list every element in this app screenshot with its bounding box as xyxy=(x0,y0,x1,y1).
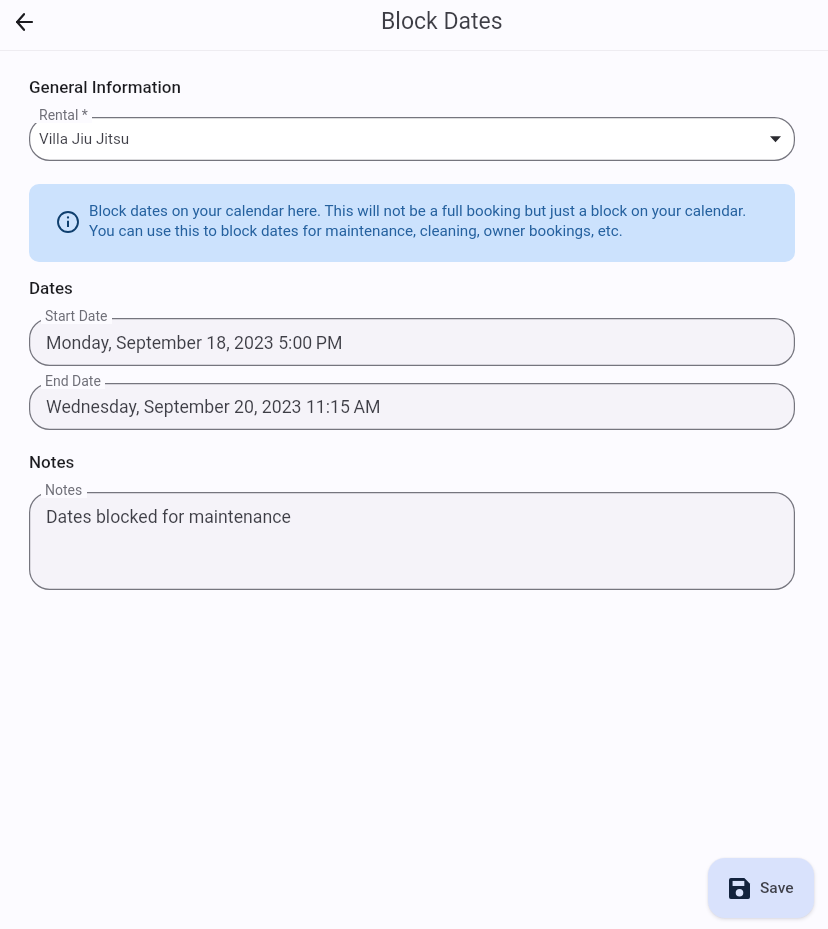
staticText: Block dates on your calendar here. This … xyxy=(89,202,761,240)
staticText: Wednesday, September 20, 2023 11:15 AM xyxy=(46,397,381,418)
staticText: Notes xyxy=(29,452,75,472)
staticText: General Information xyxy=(29,77,181,97)
button[interactable]: Block dates on your calendar here. This … xyxy=(29,184,795,262)
staticText: Dates blocked for maintenance xyxy=(46,507,291,528)
staticText: Villa Jiu Jitsu xyxy=(39,130,130,148)
staticText: Monday, September 18, 2023 5:00 PM xyxy=(46,333,343,354)
staticText: End Date xyxy=(45,373,101,389)
staticText: Start Date xyxy=(45,308,108,324)
button[interactable]: Villa Jiu Jitsu xyxy=(29,117,795,161)
button[interactable]: Monday, September 18, 2023 5:00 PM xyxy=(29,318,795,366)
staticText: Save xyxy=(760,879,794,897)
button[interactable]: Dates blocked for maintenance xyxy=(29,492,795,590)
staticText: Block Dates xyxy=(381,8,503,35)
staticText: Dates xyxy=(29,278,73,298)
button[interactable]: Save xyxy=(708,858,814,918)
button[interactable]: Wednesday, September 20, 2023 11:15 AM xyxy=(29,383,795,430)
staticText: Notes xyxy=(45,482,83,498)
button[interactable]: Back xyxy=(4,1,44,41)
staticText: Rental * xyxy=(39,107,88,123)
